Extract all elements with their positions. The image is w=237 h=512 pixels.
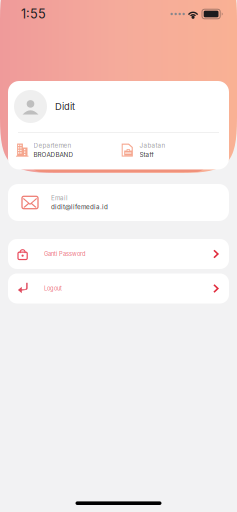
button[interactable]: Logout — [8, 273, 229, 303]
staticText: Email — [51, 194, 68, 202]
button[interactable]: Ganti Password — [8, 239, 229, 269]
staticText: Departemen — [33, 142, 71, 149]
staticText: Staff — [139, 151, 153, 158]
staticText: Ganti Password — [44, 250, 86, 257]
staticText: Didit — [55, 101, 75, 112]
staticText: Jabatan — [139, 142, 165, 149]
staticText: didit@lifemedia.id — [51, 203, 108, 211]
staticText: 1:55 — [21, 6, 46, 22]
staticText: Logout — [44, 285, 62, 292]
staticText: BROADBAND — [33, 151, 73, 158]
